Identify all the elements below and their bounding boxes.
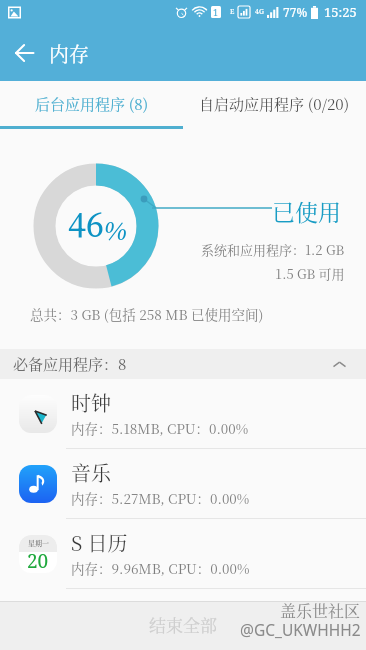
staticText: 46 [68, 200, 104, 249]
staticText: 必备应用程序：8 [13, 353, 127, 375]
button[interactable]: 必备应用程序：8 [0, 349, 366, 379]
staticText: 77% [283, 4, 308, 20]
staticText: 总共：3 GB (包括 258 MB 已使用空间) [30, 304, 264, 323]
button[interactable]: 星期一 [0, 519, 366, 588]
staticText: 1.5 GB 可用 [275, 264, 345, 283]
staticText: 已使用 [272, 195, 341, 228]
button[interactable]: 结束全部 [0, 601, 366, 650]
staticText: 结束全部 [149, 612, 217, 636]
staticText: 内存：9.96MB, CPU：0.00% [71, 558, 250, 577]
button[interactable]: 音乐 [0, 449, 366, 518]
button[interactable]: 时钟 [0, 379, 366, 448]
staticText: 4G [255, 7, 264, 17]
staticText: 内存：5.18MB, CPU：0.00% [71, 418, 249, 437]
staticText: 内存：5.27MB, CPU：0.00% [71, 488, 250, 507]
staticText: 15:25 [324, 3, 357, 21]
button[interactable]: 后台应用程序 (8) [0, 81, 183, 126]
staticText: 20 [27, 548, 49, 573]
button[interactable]: Back [0, 28, 49, 77]
staticText: 内存 [49, 39, 89, 68]
staticText: 星期一 [28, 538, 49, 548]
staticText: % [104, 212, 128, 249]
staticText: 盖乐世社区 [280, 599, 361, 622]
staticText: 自启动应用程序 (0/20) [199, 93, 350, 115]
staticText: 音乐 [71, 458, 111, 487]
staticText: 时钟 [71, 388, 111, 417]
staticText: E [230, 7, 235, 17]
staticText: 1 [213, 6, 219, 18]
staticText: S 日历 [71, 528, 128, 557]
staticText: 系统和应用程序：1.2 GB [201, 240, 345, 259]
staticText: 后台应用程序 (8) [35, 93, 149, 115]
staticText: @GC_UKWHHH2 [240, 619, 361, 640]
button[interactable]: 自启动应用程序 (0/20) [183, 81, 366, 126]
